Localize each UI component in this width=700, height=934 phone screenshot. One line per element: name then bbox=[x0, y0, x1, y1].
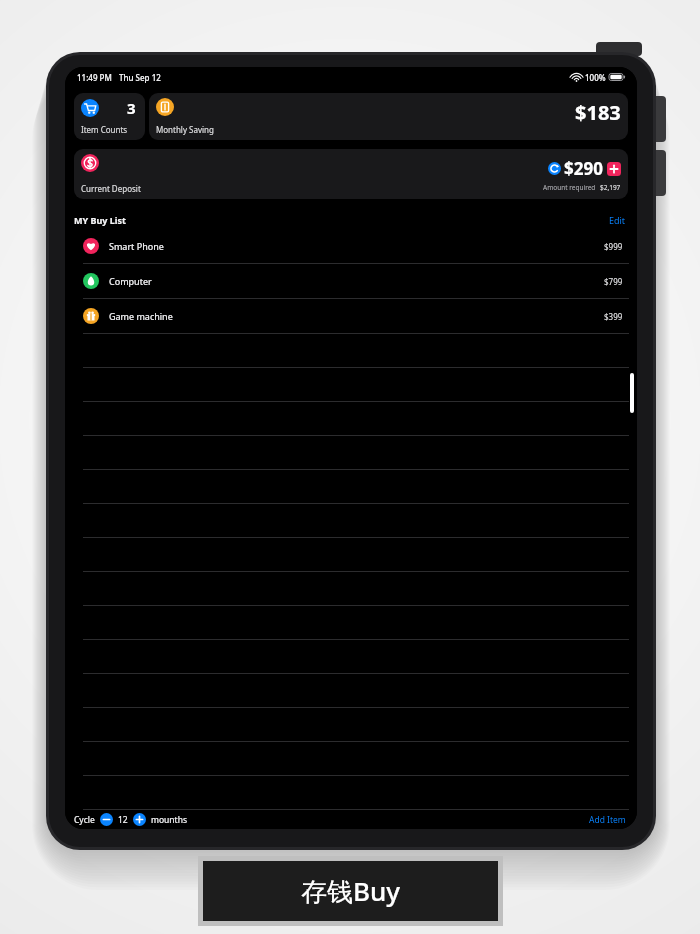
staticText: 3 bbox=[127, 98, 136, 118]
staticText: Amount required bbox=[543, 183, 596, 192]
staticText: 存钱Buy bbox=[301, 873, 401, 909]
staticText: Add Item bbox=[589, 814, 626, 826]
staticText: MY Buy List bbox=[74, 214, 126, 226]
button[interactable]: Smart Phone bbox=[65, 229, 637, 263]
staticText: Computer bbox=[109, 275, 152, 287]
staticText: Smart Phone bbox=[109, 240, 164, 252]
staticText: 11:49 PM bbox=[77, 72, 112, 83]
button[interactable]: Add deposit bbox=[607, 162, 621, 176]
staticText: $2,197 bbox=[600, 183, 621, 192]
staticText: 12 bbox=[118, 814, 128, 826]
staticText: Edit bbox=[609, 214, 626, 226]
button[interactable]: Increase cycle bbox=[133, 813, 146, 826]
staticText: $799 bbox=[604, 276, 623, 287]
button[interactable]: Computer bbox=[65, 264, 637, 298]
staticText: Item Counts bbox=[81, 124, 128, 135]
button[interactable]: Monthly Saving bbox=[149, 93, 628, 140]
button[interactable]: Game machine bbox=[65, 299, 637, 333]
staticText: Current Deposit bbox=[81, 183, 141, 194]
staticText: $183 bbox=[575, 99, 621, 126]
button[interactable]: 3 bbox=[74, 93, 145, 140]
staticText: $999 bbox=[604, 241, 623, 252]
button[interactable]: Current Deposit bbox=[74, 149, 628, 199]
staticText: 100% bbox=[585, 72, 606, 83]
staticText: Thu Sep 12 bbox=[119, 72, 161, 83]
button[interactable]: Decrease cycle bbox=[100, 813, 113, 826]
staticText: Monthly Saving bbox=[156, 124, 214, 135]
staticText: $290 bbox=[564, 157, 603, 180]
staticText: $399 bbox=[604, 311, 623, 322]
staticText: mounths bbox=[151, 814, 187, 826]
button[interactable]: Edit bbox=[607, 212, 628, 228]
staticText: Cycle bbox=[74, 814, 95, 826]
button[interactable]: Add Item bbox=[587, 812, 628, 828]
staticText: Game machine bbox=[109, 310, 173, 322]
